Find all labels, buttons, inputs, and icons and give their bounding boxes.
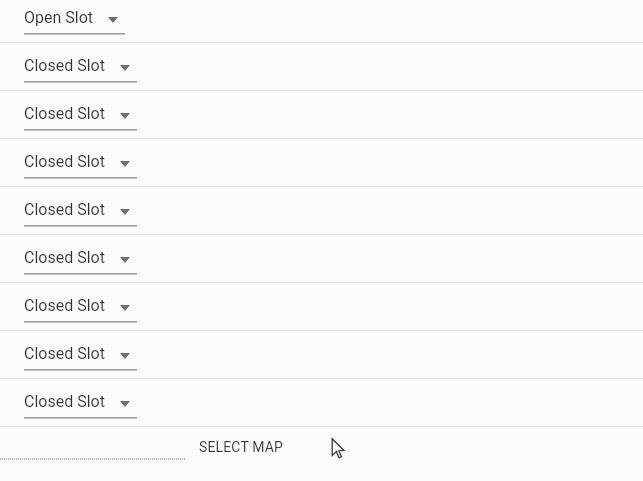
button[interactable]: Closed Slot: [0, 43, 643, 91]
staticText: Open Slot: [24, 8, 94, 27]
button[interactable]: Closed Slot: [24, 56, 137, 83]
button[interactable]: Closed Slot: [24, 296, 137, 323]
staticText: Closed Slot: [24, 200, 105, 219]
button[interactable]: Closed Slot: [0, 91, 643, 139]
button[interactable]: Open Slot: [24, 8, 125, 35]
button[interactable]: Closed Slot: [0, 331, 643, 379]
button[interactable]: Closed Slot: [24, 344, 137, 371]
button[interactable]: Closed Slot: [0, 139, 643, 187]
staticText: SELECT MAP: [199, 439, 284, 455]
button[interactable]: Closed Slot: [0, 379, 643, 427]
button[interactable]: Open Slot: [0, 0, 643, 43]
staticText: Closed Slot: [24, 248, 105, 267]
button[interactable]: Closed Slot: [24, 392, 137, 419]
button[interactable]: Closed Slot: [24, 248, 137, 275]
button[interactable]: Map slot (disabled): [0, 433, 185, 460]
staticText: Closed Slot: [24, 344, 105, 363]
button[interactable]: Closed Slot: [0, 235, 643, 283]
button[interactable]: Closed Slot: [24, 104, 137, 131]
button[interactable]: SELECT MAP: [188, 431, 273, 447]
staticText: Closed Slot: [24, 152, 105, 171]
button[interactable]: Closed Slot: [24, 152, 137, 179]
staticText: Closed Slot: [24, 56, 105, 75]
staticText: Closed Slot: [24, 392, 105, 411]
button[interactable]: Closed Slot: [0, 187, 643, 235]
staticText: Closed Slot: [24, 296, 105, 315]
button[interactable]: Closed Slot: [24, 200, 137, 227]
button[interactable]: Closed Slot: [0, 283, 643, 331]
staticText: Closed Slot: [24, 104, 105, 123]
